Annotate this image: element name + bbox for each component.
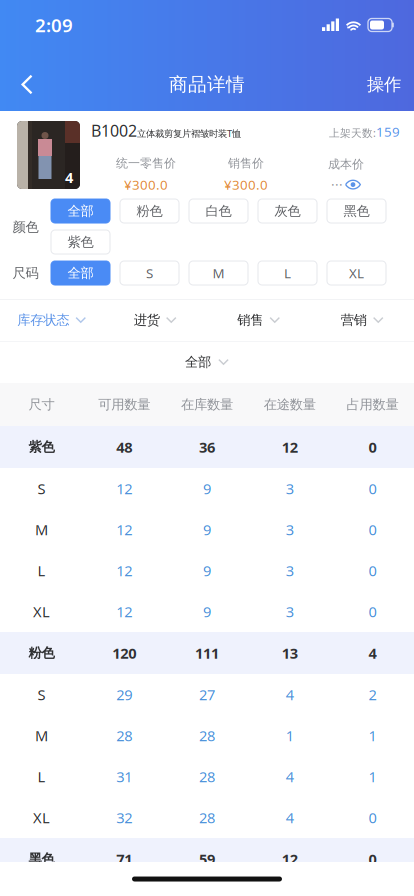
button[interactable]: Show cost price xyxy=(331,177,361,193)
staticText: M xyxy=(35,520,48,539)
staticText: 12 xyxy=(116,602,132,621)
staticText: 27 xyxy=(199,685,215,704)
staticText: 3 xyxy=(286,479,294,498)
button[interactable]: 营销 xyxy=(310,299,414,341)
staticText: ¥300.0 xyxy=(124,176,168,193)
staticText: 48 xyxy=(116,437,132,457)
staticText: 0 xyxy=(369,520,377,539)
staticText: 粉色 xyxy=(28,645,54,661)
staticText: S xyxy=(146,264,153,282)
staticText: 111 xyxy=(195,643,219,663)
staticText: 0 xyxy=(369,561,377,580)
button[interactable]: 库存状态 xyxy=(0,299,103,341)
staticText: 黑色 xyxy=(28,851,54,867)
button[interactable]: 白色 xyxy=(189,199,248,223)
staticText: 0 xyxy=(369,602,377,621)
staticText: 2:09 xyxy=(35,13,73,37)
staticText: 28 xyxy=(116,726,132,745)
button[interactable]: 销售 xyxy=(207,299,310,341)
staticText: 2 xyxy=(369,685,377,704)
staticText: XL xyxy=(33,808,50,827)
button[interactable]: S xyxy=(120,261,179,285)
staticText: 13 xyxy=(282,643,298,663)
staticText: 上架天数: xyxy=(329,126,376,140)
staticText: 紫色 xyxy=(28,439,54,455)
staticText: 12 xyxy=(116,520,132,539)
staticText: 4 xyxy=(286,685,294,704)
staticText: 1 xyxy=(286,726,294,745)
staticText: XL xyxy=(349,264,364,282)
button[interactable]: 黑色 xyxy=(327,199,386,223)
staticText: 4 xyxy=(286,808,294,827)
button[interactable]: 全部 xyxy=(0,341,414,383)
staticText: S xyxy=(37,685,45,704)
button[interactable]: 全部 xyxy=(51,261,110,285)
button[interactable]: M xyxy=(189,261,248,285)
staticText: 4 xyxy=(286,767,294,786)
staticText: 59 xyxy=(199,849,215,869)
staticText: 28 xyxy=(199,767,215,786)
staticText: 1 xyxy=(369,767,377,786)
staticText: 29 xyxy=(116,685,132,704)
staticText: 71 xyxy=(116,849,132,869)
staticText: 粉色 xyxy=(136,203,162,219)
staticText: 白色 xyxy=(205,203,231,219)
staticText: 全部 xyxy=(67,265,93,281)
staticText: 4 xyxy=(369,643,377,663)
staticText: 成本价 xyxy=(328,157,364,172)
staticText: 32 xyxy=(116,808,132,827)
staticText: 12 xyxy=(116,479,132,498)
staticText: ··· xyxy=(331,176,343,193)
staticText: 28 xyxy=(199,808,215,827)
button[interactable]: 粉色 xyxy=(120,199,179,223)
staticText: 3 xyxy=(286,602,294,621)
staticText: 0 xyxy=(369,479,377,498)
staticText: 全部 xyxy=(185,354,211,370)
staticText: 操作 xyxy=(367,74,401,95)
staticText: 立体裁剪复片褶皱时装T恤 xyxy=(137,127,241,139)
staticText: 0 xyxy=(369,808,377,827)
button[interactable]: 进货 xyxy=(103,299,207,341)
staticText: 紫色 xyxy=(67,234,93,250)
staticText: 120 xyxy=(112,643,136,663)
staticText: 0 xyxy=(369,849,377,869)
staticText: 库存状态 xyxy=(17,312,69,328)
staticText: XL xyxy=(33,602,50,621)
staticText: 3 xyxy=(286,561,294,580)
staticText: 黑色 xyxy=(343,203,369,219)
staticText: M xyxy=(35,726,48,745)
staticText: 9 xyxy=(203,602,211,621)
staticText: ¥300.0 xyxy=(224,176,268,193)
staticText: 商品详情 xyxy=(169,73,245,96)
staticText: B1002 xyxy=(91,120,137,141)
button[interactable]: 全部 xyxy=(51,199,110,223)
staticText: 统一零售价 xyxy=(116,156,176,171)
staticText: 1 xyxy=(369,726,377,745)
staticText: 12 xyxy=(282,849,298,869)
staticText: 占用数量 xyxy=(347,396,399,413)
staticText: L xyxy=(37,561,45,580)
staticText: M xyxy=(212,264,224,282)
staticText: 尺码 xyxy=(12,265,38,281)
staticText: 12 xyxy=(282,437,298,457)
button[interactable]: 紫色 xyxy=(51,230,110,254)
staticText: 36 xyxy=(199,437,215,457)
staticText: 销售价 xyxy=(228,156,264,171)
staticText: L xyxy=(284,264,291,282)
staticText: 3 xyxy=(286,520,294,539)
staticText: 灰色 xyxy=(274,203,300,219)
staticText: 31 xyxy=(116,767,132,786)
button[interactable]: XL xyxy=(327,261,386,285)
button[interactable]: L xyxy=(258,261,317,285)
staticText: L xyxy=(37,767,45,786)
button[interactable]: 灰色 xyxy=(258,199,317,223)
staticText: 可用数量 xyxy=(98,396,150,413)
button[interactable]: Back xyxy=(0,62,47,106)
staticText: 全部 xyxy=(67,203,93,219)
staticText: 进货 xyxy=(134,312,160,328)
staticText: 9 xyxy=(203,520,211,539)
staticText: 9 xyxy=(203,561,211,580)
staticText: 9 xyxy=(203,479,211,498)
staticText: 0 xyxy=(369,437,377,457)
button[interactable]: 操作 xyxy=(353,62,414,107)
